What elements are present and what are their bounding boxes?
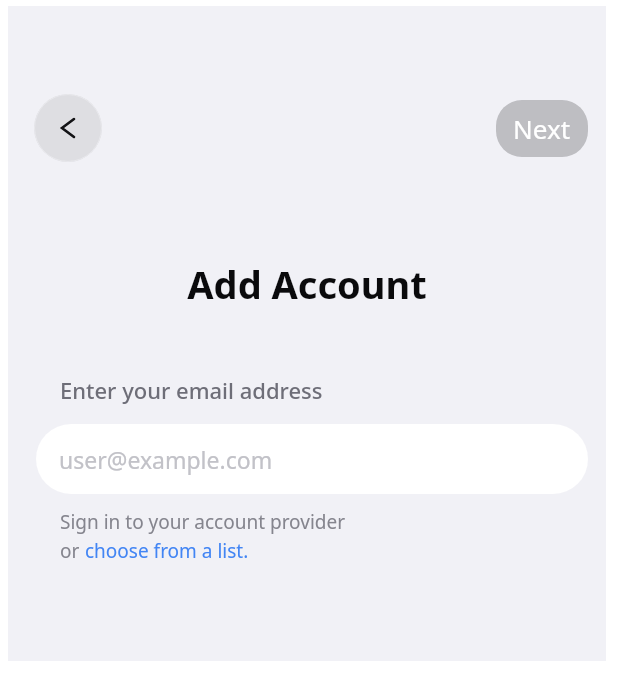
button[interactable]: Next — [496, 100, 588, 157]
staticText: or — [60, 538, 85, 564]
staticText: Add Account — [187, 258, 427, 310]
staticText: user@example.com — [59, 444, 273, 475]
staticText: choose from a list. — [85, 538, 249, 564]
staticText: Enter your email address — [60, 375, 323, 405]
button[interactable]: user@example.com — [36, 424, 588, 494]
button[interactable]: choose from a list. — [85, 538, 249, 564]
button[interactable]: Back — [34, 94, 102, 162]
staticText: Sign in to your account provider — [60, 509, 346, 535]
staticText: Next — [513, 111, 571, 146]
